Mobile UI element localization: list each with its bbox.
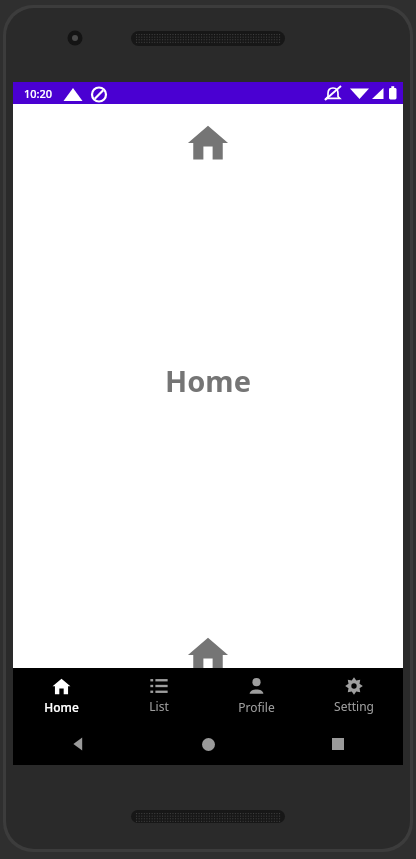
staticText: Profile xyxy=(238,699,275,715)
staticText: Home xyxy=(44,699,79,715)
staticText: Setting xyxy=(334,698,374,714)
button[interactable]: Profile xyxy=(207,668,305,723)
button[interactable]: Back xyxy=(13,723,143,765)
button[interactable]: List xyxy=(110,668,207,723)
button[interactable]: Home xyxy=(143,723,273,765)
button[interactable]: Setting xyxy=(305,668,403,723)
button[interactable]: Home xyxy=(13,668,110,723)
staticText: List xyxy=(149,698,169,714)
staticText: 10:20 xyxy=(24,86,53,101)
button[interactable]: Recent apps xyxy=(273,723,403,765)
staticText: Home xyxy=(165,361,251,400)
